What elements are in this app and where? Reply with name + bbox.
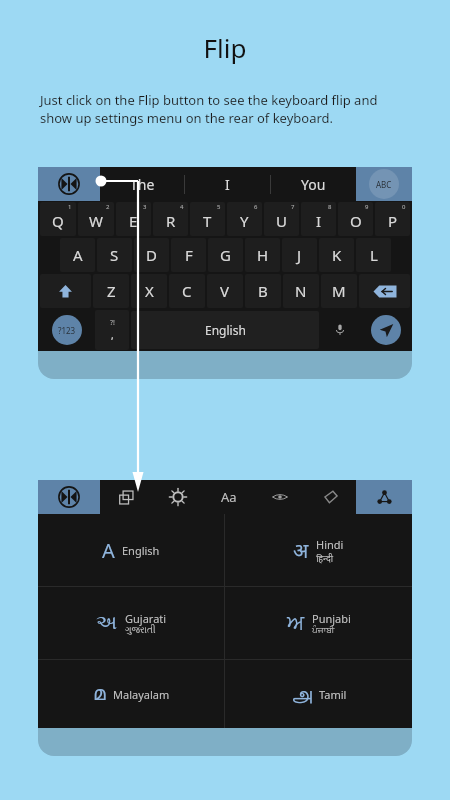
staticText: D bbox=[146, 245, 157, 265]
staticText: அ bbox=[291, 684, 312, 704]
button[interactable]: Voice input bbox=[320, 309, 360, 351]
button[interactable]: K bbox=[319, 238, 354, 272]
button[interactable]: 4 bbox=[153, 202, 188, 236]
staticText: F bbox=[185, 245, 193, 265]
button[interactable]: English bbox=[131, 311, 319, 349]
staticText: B bbox=[258, 281, 268, 301]
staticText: Just click on the Flip button to see the… bbox=[40, 91, 378, 127]
staticText: K bbox=[332, 245, 342, 265]
button[interactable]: V bbox=[207, 274, 243, 308]
button[interactable]: The bbox=[100, 167, 184, 201]
staticText: R bbox=[166, 211, 176, 231]
staticText: Gujarati bbox=[125, 611, 167, 626]
button[interactable]: ?! bbox=[95, 310, 129, 350]
button[interactable]: અ bbox=[38, 587, 224, 659]
button[interactable]: J bbox=[282, 238, 317, 272]
staticText: The bbox=[130, 175, 155, 194]
button[interactable]: Languages bbox=[100, 480, 152, 514]
button[interactable]: Flip back bbox=[38, 480, 100, 514]
staticText: 5 bbox=[217, 203, 221, 211]
button[interactable]: G bbox=[208, 238, 243, 272]
staticText: Q bbox=[52, 211, 64, 231]
staticText: Aa bbox=[221, 488, 237, 506]
button[interactable]: Preview bbox=[254, 480, 305, 514]
button[interactable]: 2 bbox=[78, 202, 114, 236]
staticText: English bbox=[122, 543, 160, 558]
staticText: X bbox=[145, 281, 154, 301]
button[interactable]: A bbox=[38, 514, 224, 586]
button[interactable]: 7 bbox=[264, 202, 299, 236]
button[interactable]: 1 bbox=[40, 202, 76, 236]
button[interactable]: 3 bbox=[116, 202, 151, 236]
button[interactable]: Share bbox=[356, 480, 412, 514]
staticText: I bbox=[316, 211, 322, 231]
button[interactable]: 6 bbox=[227, 202, 262, 236]
staticText: H bbox=[257, 245, 269, 265]
staticText: V bbox=[220, 281, 230, 301]
button[interactable]: M bbox=[321, 274, 357, 308]
button[interactable]: I bbox=[185, 167, 270, 201]
button[interactable]: 5 bbox=[190, 202, 225, 236]
staticText: E bbox=[129, 211, 138, 231]
staticText: 6 bbox=[254, 203, 258, 211]
button[interactable]: அ bbox=[225, 660, 412, 728]
staticText: Z bbox=[107, 281, 116, 301]
button[interactable]: 9 bbox=[338, 202, 373, 236]
button[interactable]: Flip bbox=[38, 167, 100, 201]
button[interactable]: X bbox=[131, 274, 167, 308]
button[interactable]: 8 bbox=[301, 202, 336, 236]
button[interactable]: Shift bbox=[40, 274, 91, 308]
staticText: O bbox=[350, 211, 362, 231]
button[interactable]: D bbox=[134, 238, 169, 272]
staticText: 7 bbox=[291, 203, 295, 211]
staticText: Punjabi bbox=[312, 611, 351, 626]
staticText: You bbox=[301, 175, 326, 194]
staticText: മ bbox=[93, 684, 106, 704]
button[interactable]: C bbox=[169, 274, 205, 308]
staticText: U bbox=[276, 211, 287, 231]
button[interactable]: മ bbox=[38, 660, 224, 728]
button[interactable]: N bbox=[283, 274, 319, 308]
staticText: અ bbox=[96, 613, 118, 633]
button[interactable]: ?123 bbox=[39, 309, 94, 351]
staticText: I bbox=[225, 175, 230, 194]
staticText: ?! bbox=[110, 318, 115, 328]
staticText: ਪੰਜਾਬੀ bbox=[312, 626, 335, 635]
staticText: 8 bbox=[328, 203, 332, 211]
button[interactable]: Send bbox=[360, 309, 411, 351]
staticText: M bbox=[332, 281, 346, 301]
button[interactable]: अ bbox=[225, 514, 412, 586]
button[interactable]: H bbox=[245, 238, 280, 272]
button[interactable]: A bbox=[60, 238, 95, 272]
staticText: 2 bbox=[106, 203, 110, 211]
staticText: N bbox=[295, 281, 307, 301]
staticText: ગુજરાતી bbox=[125, 626, 156, 635]
staticText: Tamil bbox=[319, 687, 347, 702]
button[interactable]: You bbox=[271, 167, 356, 201]
staticText: J bbox=[297, 245, 302, 265]
button[interactable]: S bbox=[97, 238, 132, 272]
button[interactable]: Settings bbox=[152, 480, 203, 514]
button[interactable]: ਅ bbox=[225, 587, 412, 659]
button[interactable]: Backspace bbox=[359, 274, 410, 308]
button[interactable]: Text size bbox=[203, 480, 254, 514]
button[interactable]: Z bbox=[93, 274, 129, 308]
staticText: S bbox=[110, 245, 119, 265]
staticText: A bbox=[102, 537, 115, 564]
staticText: 9 bbox=[365, 203, 369, 211]
staticText: Y bbox=[240, 211, 249, 231]
button[interactable]: ABC bbox=[356, 167, 412, 201]
staticText: Hindi bbox=[316, 537, 344, 552]
staticText: , bbox=[111, 328, 114, 342]
staticText: ਅ bbox=[287, 613, 305, 633]
button[interactable]: 0 bbox=[375, 202, 410, 236]
staticText: C bbox=[182, 281, 192, 301]
staticText: Malayalam bbox=[113, 687, 170, 702]
button[interactable]: F bbox=[171, 238, 206, 272]
staticText: 0 bbox=[402, 203, 406, 211]
button[interactable]: L bbox=[356, 238, 391, 272]
staticText: 1 bbox=[68, 203, 72, 211]
button[interactable]: B bbox=[245, 274, 281, 308]
staticText: 3 bbox=[143, 203, 147, 211]
button[interactable]: Themes bbox=[305, 480, 356, 514]
